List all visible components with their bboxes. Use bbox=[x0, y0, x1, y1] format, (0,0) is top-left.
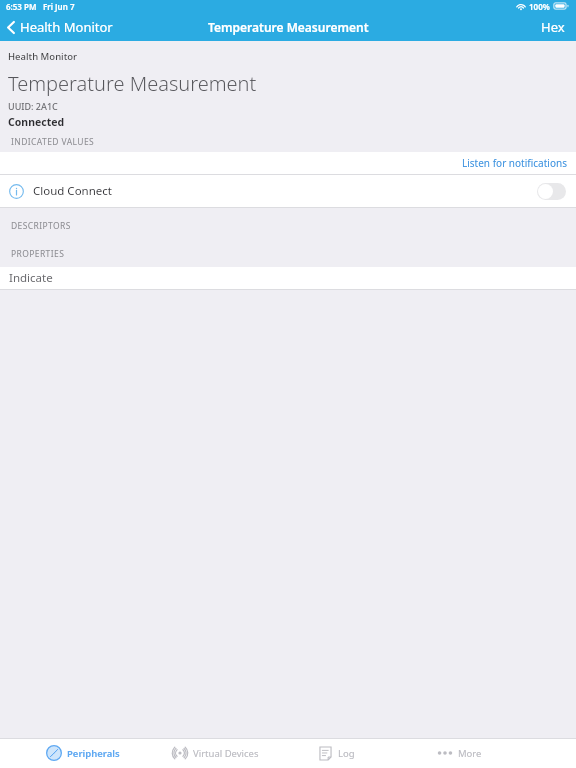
staticText: Temperature Measurement bbox=[8, 70, 257, 97]
button[interactable]: Indicate bbox=[0, 267, 576, 289]
staticText: Virtual Devices bbox=[193, 747, 259, 760]
button[interactable]: Hex bbox=[530, 14, 576, 40]
button[interactable]: Peripherals bbox=[46, 738, 172, 768]
staticText: INDICATED VALUES bbox=[11, 136, 95, 148]
staticText: Temperature Measurement bbox=[208, 19, 369, 35]
staticText: DESCRIPTORS bbox=[11, 220, 71, 232]
button[interactable]: Virtual Devices bbox=[172, 738, 318, 768]
button[interactable]: Log bbox=[318, 738, 437, 768]
staticText: 100% bbox=[529, 1, 550, 12]
staticText: Indicate bbox=[9, 270, 53, 286]
button[interactable]: Listen for notifications bbox=[0, 152, 576, 174]
staticText: Hex bbox=[541, 18, 565, 36]
staticText: PROPERTIES bbox=[11, 248, 65, 260]
staticText: Listen for notifications bbox=[462, 156, 567, 170]
staticText: More bbox=[458, 747, 482, 760]
staticText: Peripherals bbox=[67, 747, 120, 760]
staticText: Connected bbox=[8, 115, 65, 129]
staticText: Cloud Connect bbox=[33, 183, 112, 199]
staticText: 6:53 PM bbox=[6, 1, 37, 12]
staticText: Log bbox=[338, 747, 355, 760]
staticText: UUID: 2A1C bbox=[8, 100, 58, 112]
button[interactable]: Cloud Connect toggle, off bbox=[537, 183, 566, 200]
button[interactable]: Health Monitor bbox=[0, 14, 121, 40]
button[interactable]: More bbox=[437, 738, 556, 768]
staticText: Health Monitor bbox=[20, 18, 113, 36]
staticText: Fri Jun 7 bbox=[43, 1, 75, 12]
button[interactable]: Cloud Connect bbox=[0, 175, 576, 207]
staticText: Health Monitor bbox=[8, 50, 78, 63]
